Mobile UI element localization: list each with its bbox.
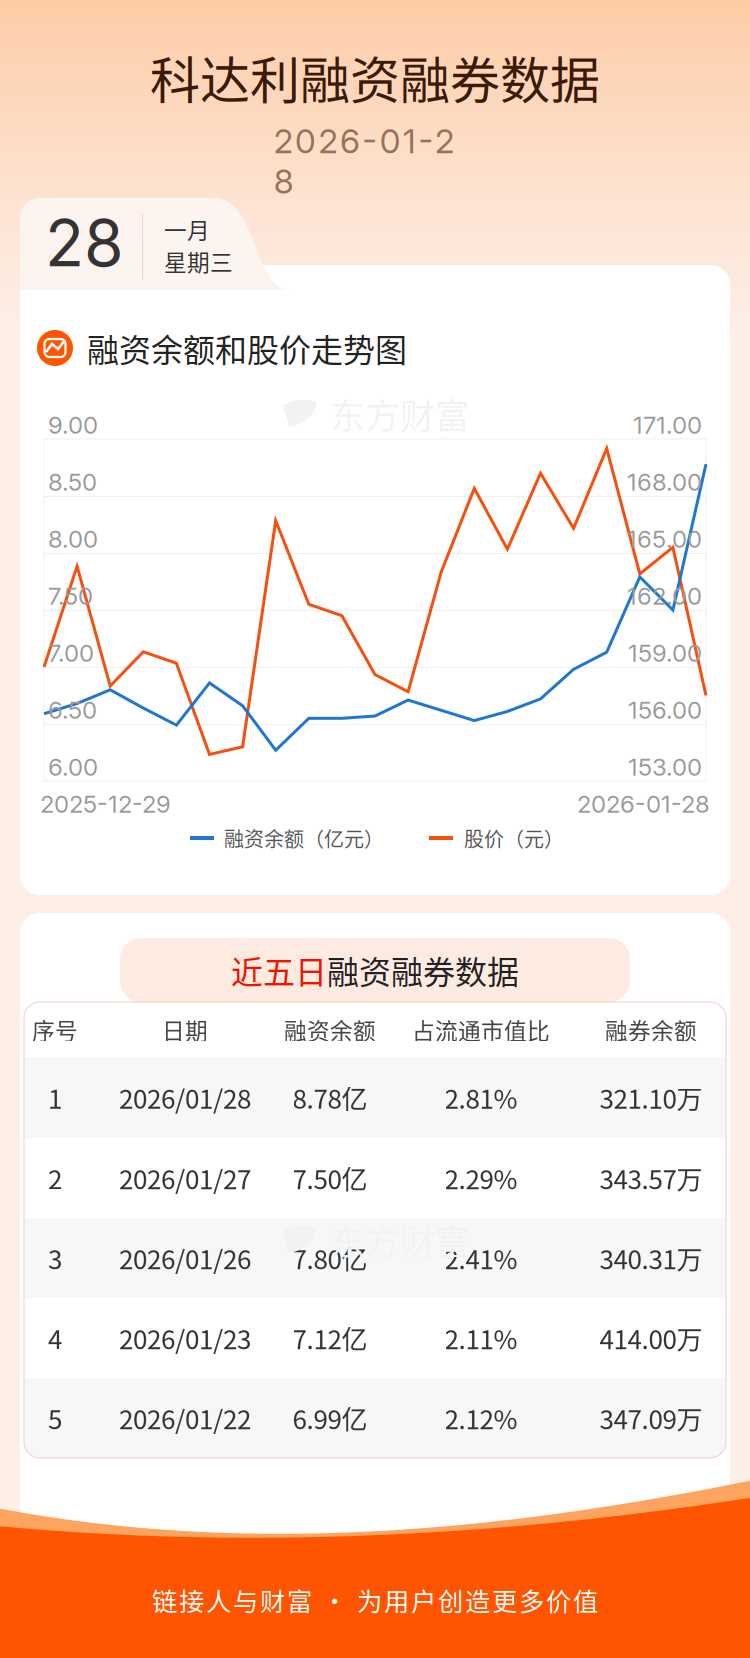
staticText: 7.80亿 [292, 1239, 367, 1277]
staticText: 星期三 [164, 245, 233, 277]
staticText: 2026-01-28 [577, 789, 710, 818]
staticText: 占流通市值比 [412, 1013, 550, 1046]
staticText: 9.00 [48, 410, 98, 439]
staticText: 2.41% [444, 1239, 517, 1277]
staticText: 168.00 [627, 467, 702, 496]
staticText: 414.00万 [599, 1319, 702, 1357]
staticText: 3 [48, 1239, 62, 1277]
staticText: 7.50亿 [292, 1159, 367, 1197]
staticText: 165.00 [627, 524, 702, 553]
staticText: 8.50 [48, 467, 97, 496]
staticText: 343.57万 [599, 1159, 702, 1197]
staticText: 6.50 [48, 695, 97, 724]
staticText: 2026/01/22 [119, 1399, 251, 1437]
staticText: 6.00 [48, 752, 98, 781]
staticText: 2.12% [444, 1399, 517, 1437]
staticText: 7.12亿 [292, 1319, 367, 1357]
staticText: 2.11% [444, 1319, 517, 1357]
staticText: 321.10万 [599, 1079, 702, 1116]
staticText: 融券余额 [605, 1013, 697, 1046]
staticText: 2.81% [444, 1079, 517, 1116]
staticText: 2025-12-29 [40, 789, 171, 818]
staticText: 4 [48, 1319, 62, 1357]
staticText: 近五日 [231, 947, 327, 993]
staticText: 156.00 [628, 695, 702, 724]
staticText: 7.00 [48, 638, 94, 667]
staticText: 融资融券数据 [327, 947, 519, 993]
staticText: 6.99亿 [292, 1399, 367, 1437]
staticText: 162.00 [627, 581, 702, 610]
staticText: 2026/01/28 [119, 1079, 251, 1116]
staticText: 融资余额 [284, 1013, 376, 1046]
staticText: 159.00 [628, 638, 702, 667]
staticText: 347.09万 [599, 1399, 702, 1437]
staticText: 2.29% [444, 1159, 517, 1197]
staticText: 1 [48, 1079, 62, 1116]
staticText: 340.31万 [599, 1239, 702, 1277]
staticText: 东方财富 [330, 389, 470, 439]
staticText: 融资余额和股价走势图 [87, 325, 407, 371]
staticText: 融资余额（亿元） [224, 823, 384, 852]
staticText: 171.00 [633, 410, 702, 439]
staticText: 7.50 [48, 581, 93, 610]
staticText: 8.00 [48, 524, 98, 553]
staticText: 链接人与财富 · 为用户创造更多价值 [152, 1582, 598, 1618]
staticText: 日期 [162, 1013, 208, 1046]
staticText: 5 [48, 1399, 62, 1437]
staticText: 2026/01/23 [119, 1319, 251, 1357]
staticText: 序号 [32, 1013, 78, 1046]
staticText: 8.78亿 [292, 1079, 367, 1116]
staticText: 东方财富 [330, 1215, 470, 1265]
staticText: 153.00 [628, 752, 702, 781]
staticText: 2026/01/26 [119, 1239, 251, 1277]
staticText: 股价（元） [464, 823, 564, 852]
staticText: 2026-01-28 [274, 121, 476, 161]
staticText: 一月 [164, 213, 210, 245]
staticText: 28 [45, 204, 124, 282]
staticText: 科达利融资融券数据 [150, 41, 600, 113]
staticText: 2 [48, 1159, 62, 1197]
staticText: 2026/01/27 [119, 1159, 251, 1197]
